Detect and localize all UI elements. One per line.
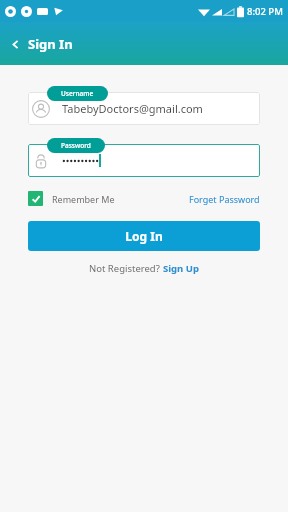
staticText: Remember Me — [52, 193, 115, 205]
staticText: Password — [61, 141, 91, 150]
button[interactable]: Log In — [28, 221, 260, 251]
staticText: Not Registered? — [89, 262, 160, 275]
staticText: 8:02 PM — [247, 5, 283, 18]
button[interactable] — [28, 144, 260, 177]
staticText: Sign Up — [163, 262, 199, 275]
button[interactable]: Password — [47, 138, 105, 153]
staticText: Sign In — [28, 35, 73, 53]
button[interactable]: TabebyDoctors@gmail.com — [28, 92, 260, 125]
button[interactable]: Username — [47, 86, 108, 101]
button[interactable]: Sign Up — [163, 262, 199, 275]
button[interactable]: Forget Password — [189, 191, 260, 207]
staticText: Forget Password — [189, 193, 260, 205]
button[interactable]: Back — [0, 27, 85, 61]
other: Back — [9, 38, 22, 51]
staticText: Log In — [125, 228, 163, 244]
button[interactable]: Remember Me — [28, 189, 115, 208]
staticText: TabebyDoctors@gmail.com — [62, 101, 203, 116]
staticText: Username — [61, 89, 94, 98]
